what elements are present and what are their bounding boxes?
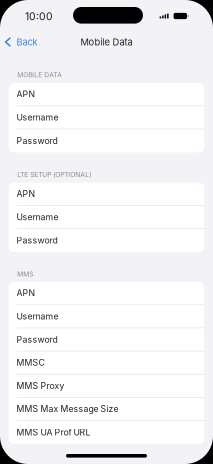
button[interactable]: Username bbox=[9, 305, 204, 328]
button[interactable]: Password bbox=[9, 229, 204, 252]
staticText: APN bbox=[17, 189, 36, 199]
button[interactable]: Username bbox=[9, 206, 204, 229]
staticText: Password bbox=[17, 136, 58, 146]
button[interactable]: APN bbox=[9, 83, 204, 106]
button[interactable]: APN bbox=[9, 182, 204, 206]
staticText: MOBILE DATA bbox=[17, 71, 62, 79]
staticText: APN bbox=[17, 288, 36, 298]
staticText: Password bbox=[17, 334, 58, 345]
button[interactable]: Password bbox=[9, 328, 204, 351]
staticText: Username bbox=[17, 212, 59, 222]
staticText: MMS bbox=[17, 270, 33, 278]
button[interactable]: Password bbox=[9, 129, 204, 152]
button[interactable]: APN bbox=[9, 282, 204, 305]
button[interactable]: MMS UA Prof URL bbox=[9, 421, 204, 444]
staticText: Username bbox=[17, 311, 59, 322]
button[interactable]: MMSC bbox=[9, 351, 204, 374]
staticText: LTE SETUP (OPTIONAL) bbox=[17, 170, 91, 179]
staticText: APN bbox=[17, 89, 36, 100]
staticText: Password bbox=[17, 235, 58, 246]
staticText: Mobile Data bbox=[80, 36, 132, 48]
staticText: 10:00 bbox=[25, 10, 53, 23]
button[interactable]: Username bbox=[9, 106, 204, 129]
button[interactable]: Back bbox=[0, 35, 43, 49]
button[interactable]: MMS Max Message Size bbox=[9, 398, 204, 421]
staticText: MMSC bbox=[17, 357, 45, 368]
staticText: Username bbox=[17, 112, 59, 123]
staticText: MMS Proxy bbox=[17, 381, 65, 391]
button[interactable]: MMS Proxy bbox=[9, 374, 204, 398]
staticText: MMS UA Prof URL bbox=[17, 427, 91, 438]
staticText: Back bbox=[16, 36, 37, 48]
staticText: MMS Max Message Size bbox=[17, 404, 119, 414]
